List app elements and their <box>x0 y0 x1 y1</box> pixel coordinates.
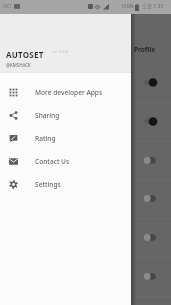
button[interactable] <box>0 103 171 142</box>
staticText: 100% <box>121 3 134 10</box>
button[interactable] <box>0 258 171 297</box>
staticText: Sharing <box>35 111 60 120</box>
button[interactable] <box>0 219 171 258</box>
staticText: 오전 1:33 <box>142 3 164 10</box>
button[interactable] <box>0 142 171 181</box>
button[interactable]: Settings <box>0 173 131 196</box>
staticText: @KMSHACK <box>6 62 31 68</box>
staticText: ver 2.0.0 <box>52 49 68 54</box>
button[interactable]: More developer Apps <box>0 81 131 104</box>
button[interactable]: Contact Us <box>0 150 131 173</box>
button[interactable] <box>0 64 171 103</box>
staticText: SKT <box>3 3 12 10</box>
button[interactable]: Rating <box>0 127 131 150</box>
staticText: AUTOSET <box>6 49 44 60</box>
staticText: More developer Apps <box>35 88 103 97</box>
staticText: Settings <box>35 180 61 189</box>
staticText: Rating <box>35 134 56 143</box>
button[interactable] <box>0 180 171 219</box>
staticText: Profile <box>134 45 156 54</box>
staticText: Contact Us <box>35 157 70 166</box>
button[interactable]: Sharing <box>0 104 131 127</box>
